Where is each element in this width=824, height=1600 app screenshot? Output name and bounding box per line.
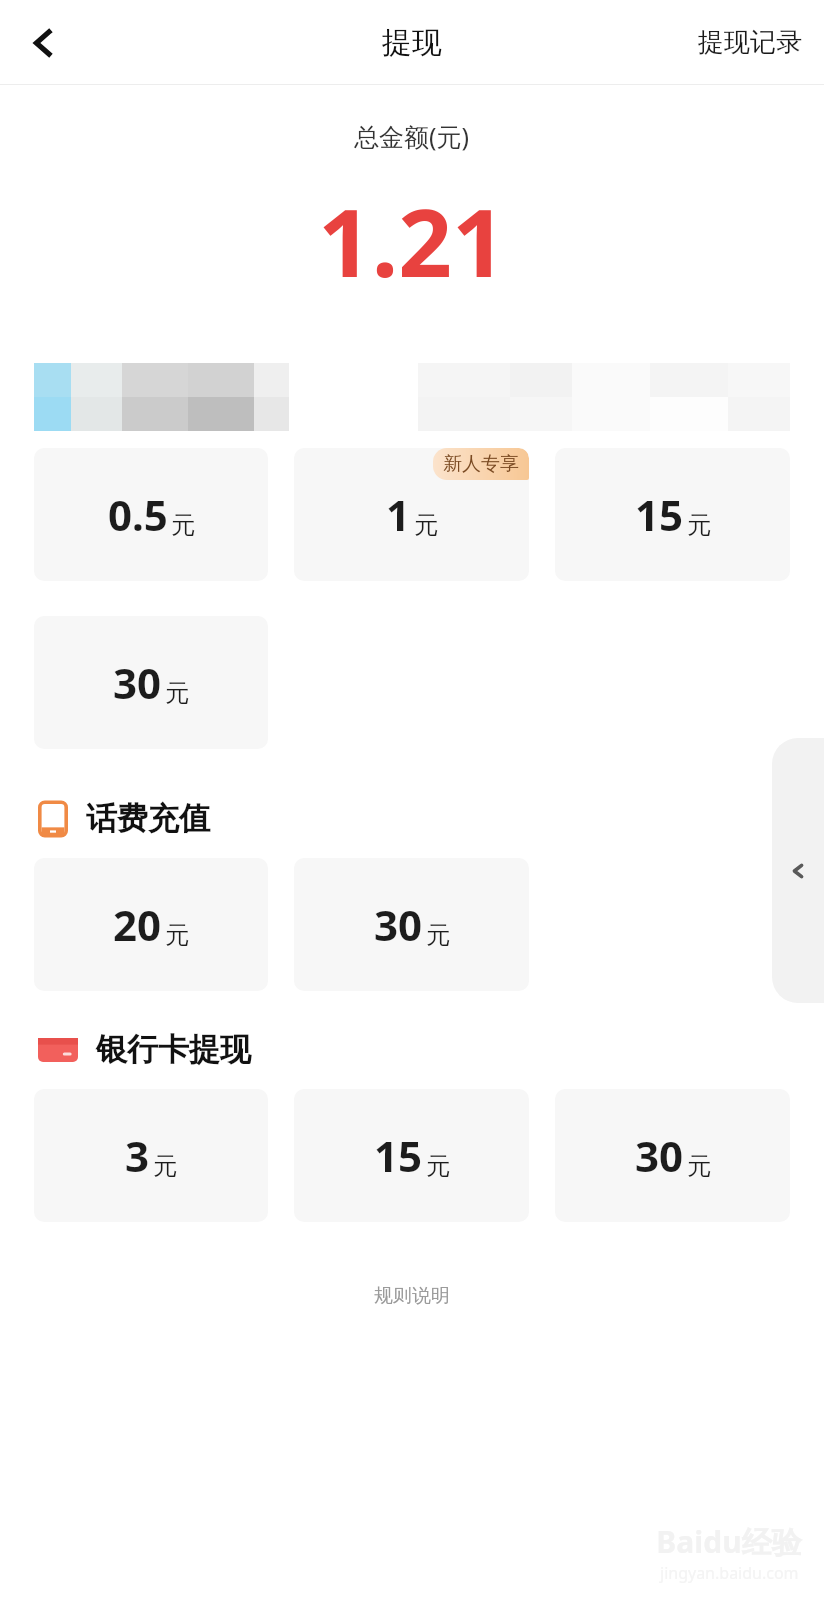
button[interactable]: 提现记录 bbox=[676, 12, 824, 73]
button[interactable]: 30 bbox=[555, 1089, 790, 1222]
staticText: 20 bbox=[113, 896, 162, 953]
staticText: 元 bbox=[687, 1151, 711, 1181]
staticText: 元 bbox=[687, 510, 711, 540]
staticText: 15 bbox=[374, 1127, 423, 1184]
staticText: 提现记录 bbox=[698, 26, 802, 59]
staticText: jingyan.baidu.com bbox=[660, 1562, 799, 1584]
staticText: 30 bbox=[113, 654, 162, 711]
staticText: 元 bbox=[426, 920, 450, 950]
staticText: 15 bbox=[635, 486, 684, 543]
staticText: 元 bbox=[153, 1151, 177, 1181]
staticText: 元 bbox=[171, 510, 195, 540]
staticText: 规则说明 bbox=[374, 1284, 450, 1308]
button[interactable]: 30 bbox=[34, 616, 268, 749]
staticText: 1 bbox=[386, 486, 411, 543]
staticText: 话费充值 bbox=[86, 799, 210, 838]
button[interactable]: 1 bbox=[294, 448, 529, 581]
staticText: 元 bbox=[165, 678, 189, 708]
staticText: 0.5 bbox=[108, 486, 168, 543]
button[interactable]: 20 bbox=[34, 858, 268, 991]
staticText: 总金额(元) bbox=[354, 119, 470, 153]
staticText: 30 bbox=[374, 896, 423, 953]
staticText: 新人专享 bbox=[443, 452, 519, 476]
staticText: 银行卡提现 bbox=[96, 1030, 251, 1069]
staticText: 1.21 bbox=[318, 177, 506, 305]
button[interactable]: 3 bbox=[34, 1089, 268, 1222]
button[interactable]: 30 bbox=[294, 858, 529, 991]
button[interactable]: 0.5 bbox=[34, 448, 268, 581]
staticText: 提现 bbox=[382, 24, 442, 62]
staticText: 元 bbox=[414, 510, 438, 540]
staticText: 30 bbox=[635, 1127, 684, 1184]
staticText: 元 bbox=[165, 920, 189, 950]
staticText: 3 bbox=[125, 1127, 150, 1184]
button[interactable]: 15 bbox=[294, 1089, 529, 1222]
button[interactable]: Back bbox=[14, 14, 72, 72]
staticText: Baidu经验 bbox=[656, 1521, 802, 1562]
button[interactable]: 15 bbox=[555, 448, 790, 581]
button[interactable]: 规则说明 bbox=[360, 1280, 464, 1312]
button[interactable]: Expand panel bbox=[772, 738, 824, 1003]
staticText: 元 bbox=[426, 1151, 450, 1181]
